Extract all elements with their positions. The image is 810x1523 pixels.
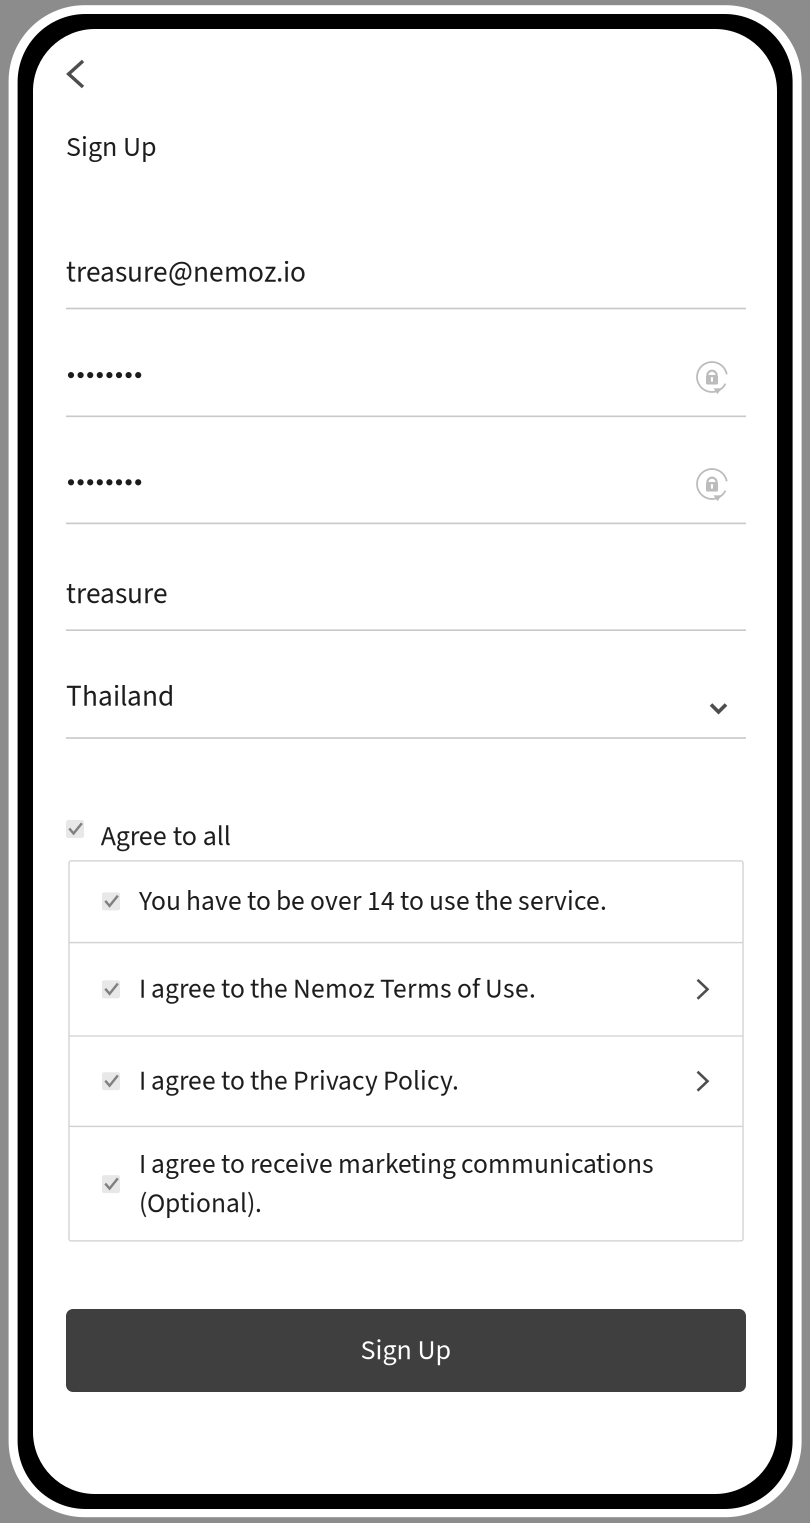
button[interactable]: You have to be over 14 to use the servic…	[69, 861, 743, 942]
staticText: You have to be over 14 to use the servic…	[139, 882, 607, 921]
staticText: Thailand	[66, 676, 174, 718]
button[interactable]: Choose country	[701, 694, 736, 722]
button[interactable]: Back	[56, 49, 95, 99]
button[interactable]: Agree to all	[62, 810, 236, 850]
staticText: Sign Up	[66, 127, 157, 167]
staticText: I agree to the Privacy Policy.	[139, 1062, 459, 1101]
staticText: I agree to receive marketing communicati…	[139, 1145, 654, 1223]
button[interactable]: I agree to the Nemoz Terms of Use.	[69, 943, 743, 1035]
staticText: I agree to the Nemoz Terms of Use.	[139, 970, 536, 1009]
button[interactable]: Sign Up	[66, 1309, 746, 1392]
button[interactable]: I agree to receive marketing communicati…	[69, 1127, 743, 1241]
staticText: treasure	[66, 573, 168, 615]
staticText: Sign Up	[360, 1331, 451, 1370]
staticText: treasure@nemoz.io	[66, 252, 306, 293]
staticText: Agree to all	[101, 816, 231, 856]
button[interactable]: I agree to the Privacy Policy.	[69, 1037, 743, 1126]
